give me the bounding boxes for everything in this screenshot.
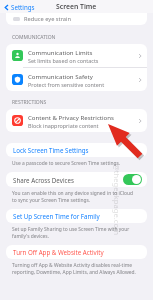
staticText: Screen Time (56, 2, 97, 11)
button[interactable]: Lock Screen Time Settings (6, 143, 147, 157)
other: Open (138, 77, 142, 83)
staticText: Communication Limits (28, 48, 93, 56)
other: Open (138, 53, 142, 59)
staticText: Block inappropriate content (28, 122, 99, 129)
button[interactable]: Communication Limits (6, 44, 147, 67)
staticText: COMMUNICATION (12, 34, 56, 41)
staticText: RESTRICTIONS (12, 99, 47, 106)
staticText: Set limits based on contacts (28, 57, 99, 64)
button[interactable]: Turn Off App & Website Activity (6, 245, 147, 259)
button[interactable]: Reduce eye strain (6, 13, 147, 25)
staticText: Turning off App & Website Activity disab… (12, 262, 136, 275)
staticText: Communication Safety (28, 72, 93, 80)
staticText: Set up Family Sharing to use Screen Time… (12, 226, 130, 239)
other: Open (138, 118, 142, 124)
staticText: Turn Off App & Website Activity (13, 248, 104, 256)
staticText: Use a passcode to secure Screen Time set… (12, 160, 121, 167)
staticText: Content & Privacy Restrictions (28, 113, 114, 121)
button[interactable]: Settings (3, 2, 36, 12)
staticText: You can enable this on any device signed… (12, 190, 134, 203)
button[interactable]: Share Across Devices (6, 172, 147, 187)
staticText: Share Across Devices (13, 176, 123, 184)
staticText: Set Up Screen Time for Family (13, 212, 100, 220)
staticText: @thegeekpage.com (112, 164, 122, 236)
button[interactable]: Content & Privacy Restrictions (6, 109, 147, 132)
staticText: Lock Screen Time Settings (13, 146, 89, 154)
button[interactable]: Communication Safety (6, 68, 147, 91)
button[interactable]: Set Up Screen Time for Family (6, 209, 147, 223)
staticText: Protect from sensitive content (28, 81, 105, 88)
staticText: Settings (11, 3, 35, 11)
staticText: Reduce eye strain (24, 15, 72, 23)
